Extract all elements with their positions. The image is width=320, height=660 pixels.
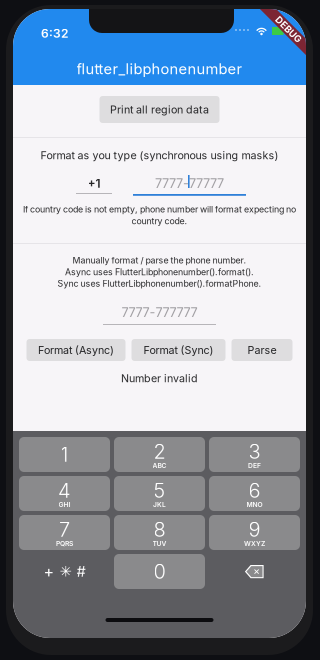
staticText: country code. xyxy=(131,216,187,226)
button[interactable]: Plus star pound xyxy=(19,554,110,589)
staticText: DEF xyxy=(248,462,261,470)
staticText: Print all region data xyxy=(110,103,209,116)
button[interactable]: 6 xyxy=(209,476,300,511)
staticText: 4 xyxy=(58,478,71,503)
staticText: PQRS xyxy=(56,540,73,548)
staticText: 7777-77777 xyxy=(155,176,224,191)
staticText: 8 xyxy=(153,517,165,542)
staticText: If country code is not empty, phone numb… xyxy=(23,204,296,215)
staticText: Format (Async) xyxy=(38,343,114,356)
button[interactable]: 5 xyxy=(114,476,205,511)
staticText: # xyxy=(76,563,85,580)
staticText: flutter_libphonenumber xyxy=(76,60,242,78)
button[interactable]: 9 xyxy=(209,515,300,550)
button[interactable]: 3 xyxy=(209,437,300,472)
staticText: ABC xyxy=(152,462,166,470)
staticText: 5 xyxy=(153,478,165,503)
staticText: 0 xyxy=(153,559,165,584)
staticText: ✳ xyxy=(59,563,71,580)
staticText: 9 xyxy=(248,517,260,542)
staticText: JKL xyxy=(153,501,166,509)
staticText: + xyxy=(43,562,54,581)
button[interactable]: 1 xyxy=(19,437,110,472)
button[interactable]: 0 xyxy=(114,554,205,589)
staticText: DEBUG xyxy=(272,24,305,35)
staticText: Parse xyxy=(247,343,276,356)
staticText: Format (Sync) xyxy=(143,343,213,356)
staticText: 3 xyxy=(248,439,260,464)
staticText: Number invalid xyxy=(121,372,198,385)
staticText: +1 xyxy=(87,176,100,190)
staticText: MNO xyxy=(246,501,262,509)
staticText: 6:32 xyxy=(41,26,68,40)
staticText: Sync uses FlutterLibphonenumber().format… xyxy=(57,278,261,289)
staticText: WXYZ xyxy=(244,540,265,548)
button[interactable]: Delete xyxy=(209,554,300,589)
staticText: 2 xyxy=(153,439,165,464)
button[interactable]: 8 xyxy=(114,515,205,550)
button[interactable]: Parse xyxy=(231,339,292,361)
button[interactable]: Format (Async) xyxy=(26,339,125,361)
staticText: Async uses FlutterLibphonenumber().forma… xyxy=(65,267,254,277)
button[interactable]: Format (Sync) xyxy=(131,339,225,361)
staticText: Manually format / parse the phone number… xyxy=(72,255,246,266)
staticText: 6 xyxy=(248,478,260,503)
staticText: GHI xyxy=(58,501,70,509)
staticText: Format as you type (synchronous using ma… xyxy=(40,149,278,162)
staticText: 7777-777777 xyxy=(121,305,197,320)
staticText: 1 xyxy=(60,442,68,467)
button[interactable]: 7 xyxy=(19,515,110,550)
button[interactable]: 2 xyxy=(114,437,205,472)
button[interactable]: Print all region data xyxy=(99,96,219,123)
button[interactable]: 4 xyxy=(19,476,110,511)
staticText: TUV xyxy=(152,540,166,548)
staticText: 7 xyxy=(59,517,70,542)
